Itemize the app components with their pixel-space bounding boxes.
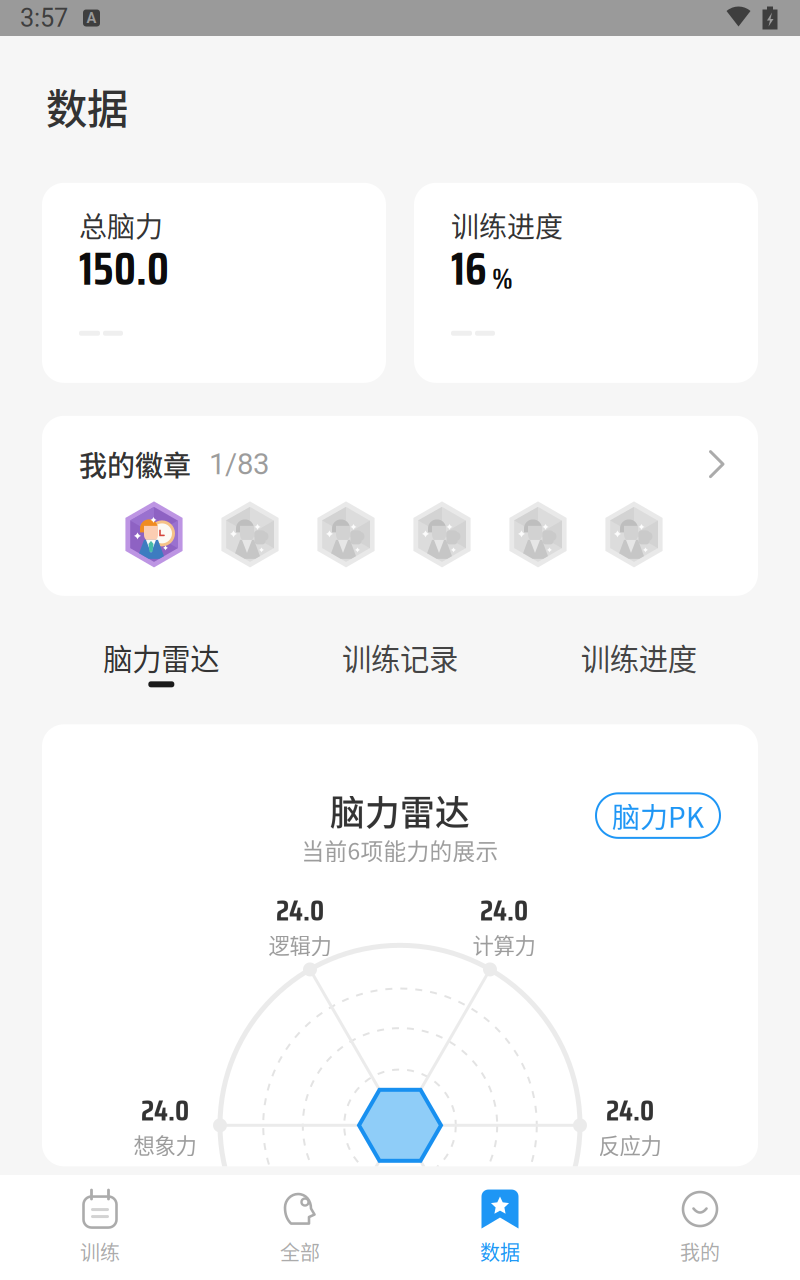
staticText: 训练: [80, 1237, 120, 1266]
staticText: 3:57: [20, 3, 68, 33]
button[interactable]: 全部: [200, 1188, 400, 1266]
button[interactable]: 脑力PK: [596, 793, 720, 838]
button[interactable]: 训练进度: [414, 183, 758, 383]
staticText: 脑力雷达: [330, 785, 470, 835]
staticText: 24.0: [606, 1087, 654, 1133]
staticText: 16: [451, 233, 487, 305]
button[interactable]: 总脑力: [42, 183, 386, 383]
staticText: 逻辑力: [268, 929, 331, 960]
button[interactable]: 数据: [400, 1188, 600, 1266]
staticText: 全部: [280, 1237, 320, 1266]
button[interactable]: 我的徽章: [42, 416, 758, 596]
staticText: 24.0: [276, 887, 324, 933]
staticText: 我的: [680, 1237, 720, 1266]
staticText: 训练进度: [451, 205, 563, 245]
staticText: 计算力: [472, 929, 535, 960]
staticText: 脑力雷达: [103, 636, 219, 678]
button[interactable]: 训练记录: [281, 636, 519, 684]
staticText: 数据: [46, 76, 128, 136]
staticText: 训练进度: [581, 636, 697, 678]
button[interactable]: 训练: [0, 1188, 200, 1266]
button[interactable]: 脑力雷达: [42, 636, 281, 684]
staticText: 训练记录: [342, 636, 458, 678]
staticText: 24.0: [141, 1087, 189, 1133]
button[interactable]: 我的: [600, 1188, 800, 1266]
button[interactable]: 训练进度: [519, 636, 758, 684]
staticText: 反应力: [598, 1129, 661, 1160]
staticText: 总脑力: [79, 205, 163, 245]
staticText: A: [86, 9, 96, 27]
staticText: 数据: [480, 1237, 520, 1266]
staticText: 1/83: [209, 447, 269, 481]
staticText: 我的徽章: [79, 444, 191, 484]
staticText: 脑力PK: [612, 795, 704, 836]
staticText: %: [492, 256, 513, 302]
staticText: 想象力: [133, 1129, 196, 1160]
staticText: 当前6项能力的展示: [301, 833, 498, 866]
staticText: 150.0: [79, 233, 169, 305]
staticText: 24.0: [480, 887, 528, 933]
